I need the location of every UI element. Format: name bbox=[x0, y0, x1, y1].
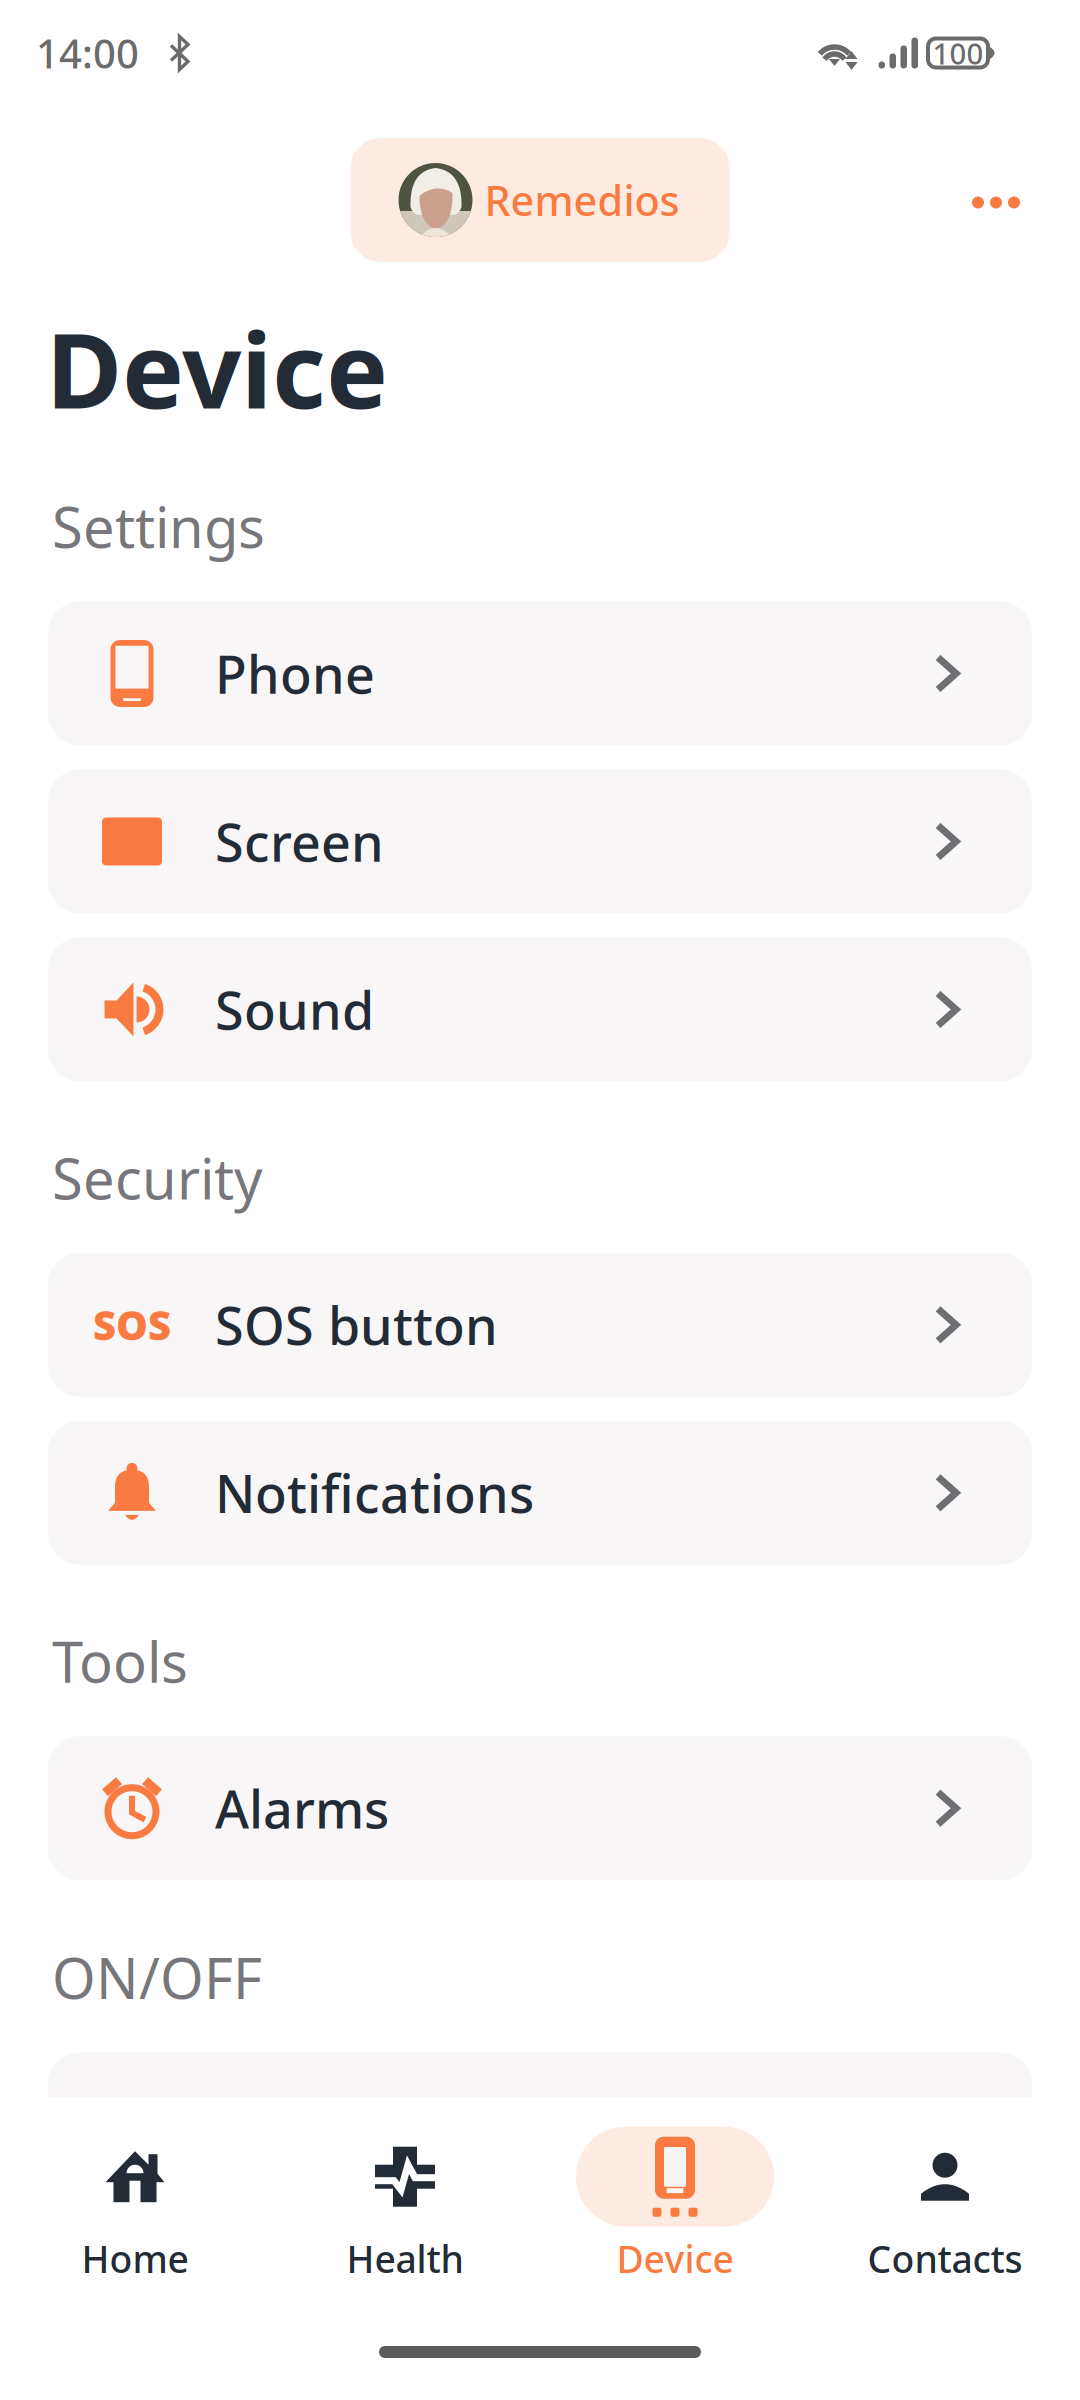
staticText: Sound bbox=[215, 975, 374, 1044]
button[interactable]: SOS bbox=[0, 1253, 1080, 1397]
button[interactable]: Home bbox=[0, 2120, 270, 2290]
button[interactable]: Contacts bbox=[810, 2120, 1080, 2290]
staticText: Alarms bbox=[215, 1774, 389, 1843]
button[interactable]: Screen bbox=[0, 769, 1080, 913]
staticText: Security bbox=[52, 1140, 263, 1215]
button[interactable]: Health bbox=[270, 2120, 540, 2290]
staticText: Health bbox=[346, 2234, 463, 2283]
staticText: Home bbox=[81, 2234, 188, 2283]
button[interactable]: Sound bbox=[0, 937, 1080, 1081]
staticText: Settings bbox=[52, 489, 265, 563]
staticText: Contacts bbox=[867, 2234, 1022, 2283]
staticText: Screen bbox=[215, 807, 384, 876]
button[interactable]: Remedios bbox=[350, 138, 729, 262]
staticText: Tools bbox=[52, 1624, 188, 1698]
button[interactable]: Device bbox=[540, 2120, 810, 2290]
staticText: Device bbox=[616, 2234, 733, 2283]
button[interactable]: Notifications bbox=[0, 1421, 1080, 1565]
button[interactable]: Phone bbox=[0, 601, 1080, 745]
staticText: Notifications bbox=[215, 1458, 534, 1527]
staticText: 14:00 bbox=[36, 26, 139, 79]
button[interactable]: Power settings bbox=[0, 2053, 1080, 2197]
staticText: ON/OFF bbox=[52, 1940, 262, 2015]
staticText: Remedios bbox=[484, 173, 679, 227]
staticText: SOS bbox=[93, 1298, 171, 1351]
staticText: SOS button bbox=[215, 1290, 498, 1359]
button[interactable]: More options bbox=[942, 142, 1080, 257]
button[interactable]: Alarms bbox=[0, 1736, 1080, 1880]
staticText: Phone bbox=[215, 639, 375, 708]
staticText: 100 bbox=[932, 33, 983, 72]
staticText: Device bbox=[46, 299, 388, 437]
